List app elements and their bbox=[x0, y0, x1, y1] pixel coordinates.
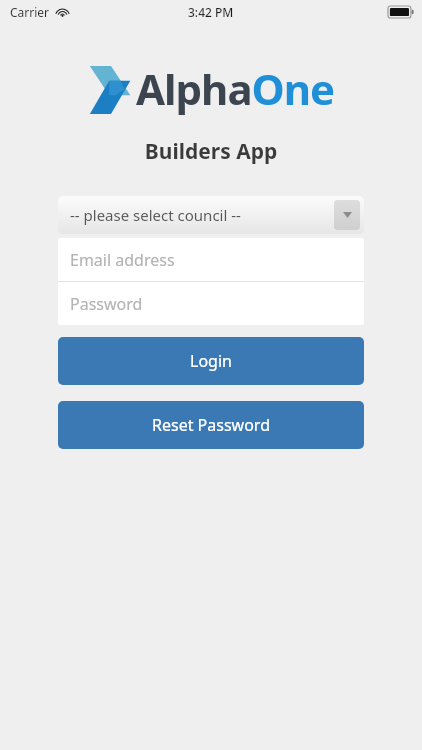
button[interactable]: Login bbox=[58, 337, 364, 385]
staticText: AlphaOne bbox=[136, 60, 335, 117]
button[interactable]: Password input bbox=[58, 282, 364, 325]
staticText: Login bbox=[190, 350, 232, 372]
button[interactable]: -- please select council -- bbox=[58, 196, 364, 234]
staticText: Carrier bbox=[10, 4, 50, 20]
staticText: Password bbox=[70, 293, 143, 315]
staticText: 3:42 PM bbox=[188, 4, 234, 20]
button[interactable]: Reset Password bbox=[58, 401, 364, 449]
staticText: Email address bbox=[70, 249, 175, 271]
staticText: Builders App bbox=[0, 137, 422, 166]
button[interactable]: Email address input bbox=[58, 238, 364, 281]
staticText: -- please select council -- bbox=[70, 205, 241, 225]
staticText: Reset Password bbox=[152, 414, 270, 436]
